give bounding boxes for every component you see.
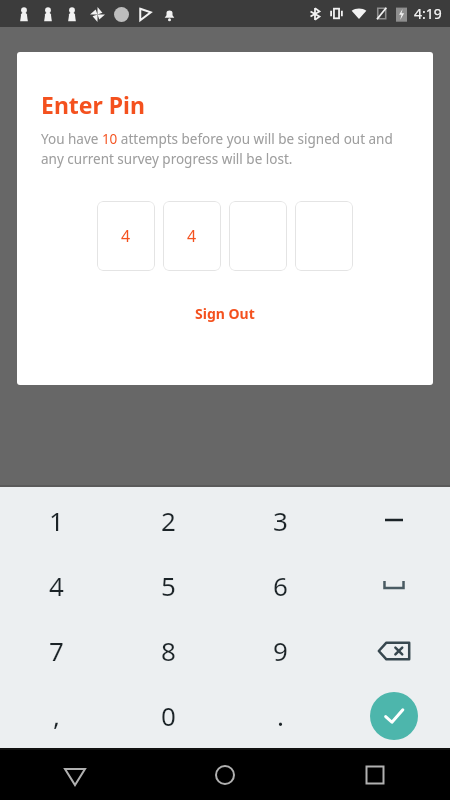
staticText: 4:19 [414, 4, 442, 23]
button[interactable]: 4 [97, 201, 155, 271]
staticText: 8 [161, 633, 176, 668]
staticText: , [53, 698, 60, 733]
button[interactable]: 6 [224, 553, 337, 618]
button[interactable]: Minus [337, 487, 450, 553]
staticText: 3 [273, 503, 288, 538]
staticText: 5 [161, 568, 176, 603]
staticText: You have 10 attempts before you will be … [41, 130, 411, 168]
button[interactable]: Space [337, 553, 450, 618]
button[interactable] [295, 201, 353, 271]
staticText: 4 [187, 225, 197, 247]
staticText: . [277, 698, 284, 733]
button[interactable]: 0 [112, 683, 224, 748]
button[interactable]: . [224, 683, 337, 748]
staticText: 9 [273, 633, 288, 668]
button[interactable] [229, 201, 287, 271]
button[interactable]: 4 [0, 553, 112, 618]
button[interactable]: 2 [112, 487, 224, 553]
staticText: 0 [161, 698, 176, 733]
staticText: Sign Out [195, 304, 255, 323]
button[interactable]: 9 [224, 618, 337, 683]
staticText: Enter Pin [41, 89, 145, 120]
button[interactable]: Done [337, 683, 450, 748]
button[interactable]: Recents [300, 750, 450, 800]
button[interactable]: Home [150, 750, 300, 800]
staticText: 7 [49, 633, 64, 668]
staticText: 6 [273, 568, 288, 603]
button[interactable]: 3 [224, 487, 337, 553]
button[interactable]: 4 [163, 201, 221, 271]
button[interactable]: 8 [112, 618, 224, 683]
button[interactable]: Sign Out [183, 298, 267, 329]
button[interactable]: 1 [0, 487, 112, 553]
button[interactable]: 5 [112, 553, 224, 618]
button[interactable]: Back [0, 750, 150, 800]
button[interactable]: 7 [0, 618, 112, 683]
staticText: 4 [49, 568, 64, 603]
staticText: 4 [121, 225, 131, 247]
button[interactable]: Delete [337, 618, 450, 683]
staticText: 2 [161, 503, 176, 538]
button[interactable]: , [0, 683, 112, 748]
staticText: 1 [49, 503, 64, 538]
